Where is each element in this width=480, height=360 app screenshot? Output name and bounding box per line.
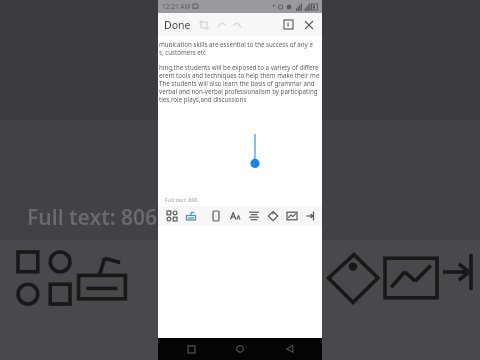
button[interactable]: Page	[206, 206, 225, 226]
button[interactable]: Done	[158, 13, 195, 36]
staticText: verbal and non-verbal professionalism by…	[159, 87, 321, 95]
button[interactable]: Align	[244, 206, 263, 226]
button[interactable]: Recents	[174, 338, 208, 360]
button[interactable]: Pages: 2	[278, 13, 298, 36]
staticText: 12:21 AM	[162, 2, 191, 11]
button[interactable]: Redo	[229, 13, 245, 36]
button[interactable]: Tag	[263, 206, 282, 226]
button[interactable]: Indent	[301, 206, 320, 226]
staticText: The students will also learn the basis o…	[159, 79, 321, 87]
button[interactable]: Image	[282, 206, 301, 226]
button[interactable]: Close	[298, 13, 320, 36]
staticText: s, customers etc	[159, 48, 321, 56]
staticText: ties,role plays,and discussions	[159, 95, 321, 103]
button[interactable]: Home	[223, 338, 257, 360]
button[interactable]: Templates	[162, 206, 181, 226]
staticText: Full text: 806	[27, 203, 158, 232]
button[interactable]: Crop	[195, 13, 213, 36]
button[interactable]: Text style	[225, 206, 244, 226]
button[interactable]: Undo	[213, 13, 229, 36]
staticText: munication skills are essential to the s…	[159, 40, 321, 48]
staticText: Full text: 806	[165, 196, 198, 203]
button[interactable]: Stamp	[181, 206, 200, 226]
staticText: hing,the students will be exposed to a v…	[159, 63, 321, 71]
button[interactable]: Back	[273, 338, 307, 360]
staticText: erent tools and techniques to help them …	[159, 71, 321, 79]
staticText: Done	[164, 18, 191, 32]
